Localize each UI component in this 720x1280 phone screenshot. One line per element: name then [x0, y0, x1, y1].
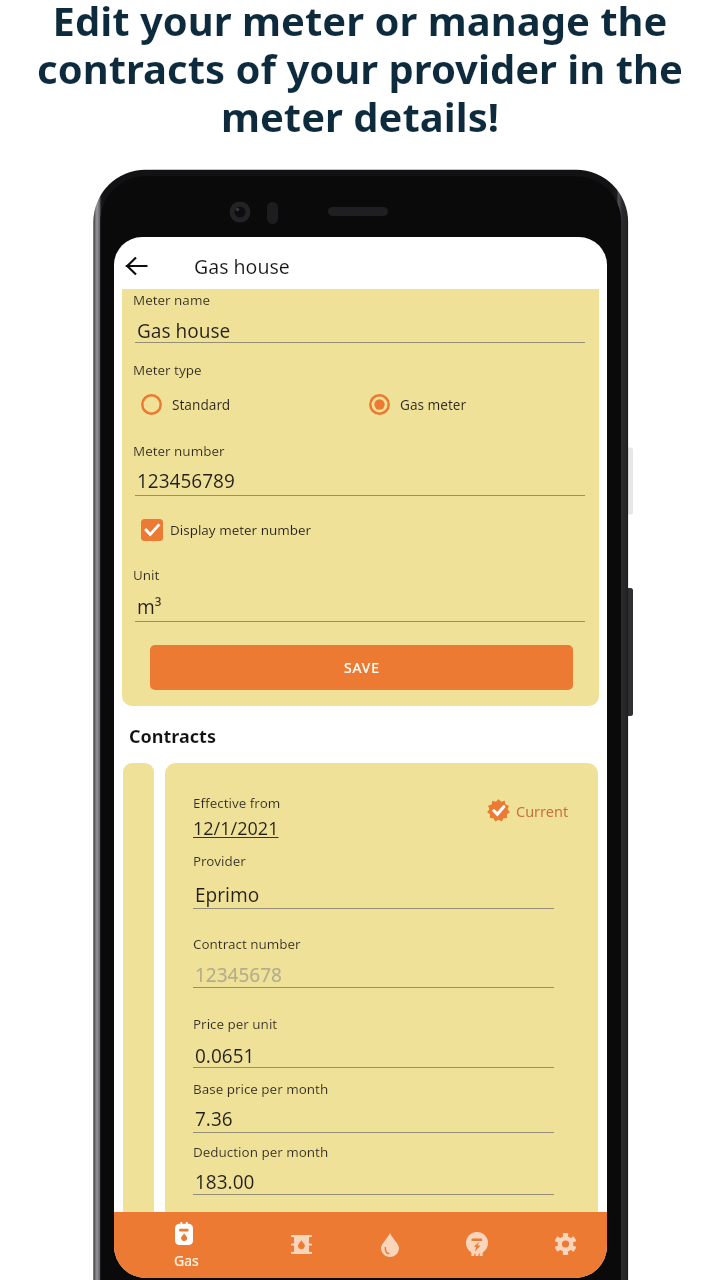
- staticText: 7.36: [195, 1106, 233, 1132]
- staticText: Base price per month: [193, 1080, 329, 1098]
- staticText: Effective from: [193, 794, 281, 812]
- staticText: Eprimo: [195, 882, 260, 908]
- staticText: 0.0651: [195, 1043, 255, 1069]
- button[interactable]: Effective from: [165, 763, 598, 1243]
- staticText: m³: [137, 594, 162, 620]
- button[interactable]: Standard: [141, 394, 231, 415]
- staticText: Provider: [193, 852, 246, 870]
- staticText: 123456789: [137, 468, 235, 494]
- staticText: Meter type: [133, 361, 202, 379]
- staticText: Edit your meter or manage the contracts …: [20, 0, 700, 143]
- button[interactable]: Gas meter: [369, 394, 467, 415]
- staticText: Display meter number: [170, 521, 312, 539]
- staticText: 12/1/2021: [193, 816, 279, 841]
- staticText: Contract number: [193, 935, 301, 953]
- staticText: Current: [516, 801, 569, 821]
- button[interactable]: Electricity: [433, 1212, 521, 1278]
- staticText: Deduction per month: [193, 1143, 329, 1161]
- button[interactable]: Display meter number: [141, 519, 312, 541]
- staticText: Gas house: [137, 318, 231, 344]
- button[interactable]: Water: [346, 1212, 434, 1278]
- staticText: Meter number: [133, 442, 225, 460]
- button[interactable]: SAVE: [150, 645, 573, 690]
- staticText: Standard: [172, 395, 231, 414]
- staticText: Gas meter: [400, 395, 467, 414]
- staticText: 183.00: [195, 1169, 255, 1195]
- staticText: Gas: [174, 1251, 199, 1270]
- button[interactable]: Settings: [521, 1212, 607, 1278]
- staticText: Contracts: [129, 724, 216, 749]
- staticText: SAVE: [344, 658, 380, 677]
- button[interactable]: Oil: [258, 1212, 346, 1278]
- staticText: Meter name: [133, 291, 210, 309]
- staticText: Price per unit: [193, 1015, 278, 1033]
- button[interactable]: Gas: [114, 1212, 255, 1278]
- staticText: Unit: [133, 566, 160, 584]
- button[interactable]: Back: [117, 246, 156, 285]
- button[interactable]: Current: [487, 799, 569, 822]
- staticText: 12345678: [195, 962, 282, 988]
- staticText: Gas house: [194, 253, 290, 280]
